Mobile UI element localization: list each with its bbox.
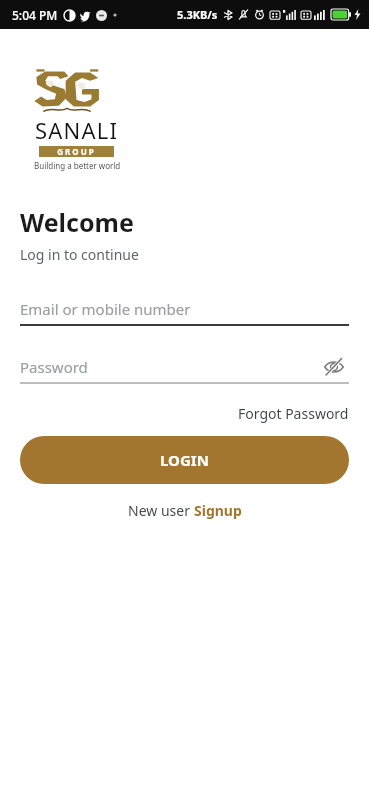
- button[interactable]: Show password: [319, 352, 349, 382]
- staticText: GROUP: [57, 146, 96, 157]
- button[interactable]: Signup: [194, 501, 242, 520]
- staticText: Signup: [194, 501, 242, 520]
- other: Sanali Group logo: [33, 67, 101, 113]
- staticText: Building a better world: [34, 160, 121, 171]
- button[interactable]: Forgot Password: [238, 400, 349, 427]
- staticText: Log in to continue: [20, 245, 139, 264]
- staticText: 5:04 PM: [12, 7, 58, 23]
- staticText: Email or mobile number: [20, 299, 191, 319]
- staticText: SANALI: [35, 115, 119, 145]
- staticText: Password: [20, 357, 319, 377]
- staticText: 5.3KB/s: [177, 7, 218, 22]
- staticText: LOGIN: [160, 450, 209, 470]
- staticText: Welcome: [20, 205, 134, 239]
- button[interactable]: LOGIN: [20, 436, 349, 484]
- button[interactable]: Email or mobile number: [20, 294, 349, 326]
- staticText: Forgot Password: [238, 404, 349, 423]
- button[interactable]: Password: [20, 352, 349, 384]
- staticText: New user: [128, 501, 194, 520]
